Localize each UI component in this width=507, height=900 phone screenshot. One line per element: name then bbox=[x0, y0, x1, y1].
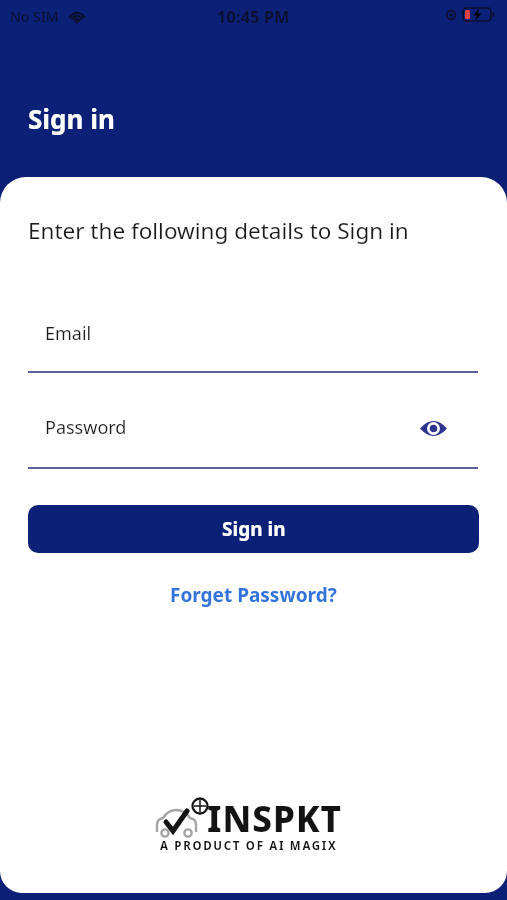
button[interactable]: Forget Password? bbox=[170, 582, 337, 608]
staticText: A PRODUCT OF AI MAGIX bbox=[160, 838, 338, 854]
staticText: No SIM bbox=[10, 7, 59, 26]
staticText: Sign in bbox=[28, 101, 115, 136]
button[interactable]: Sign in bbox=[28, 505, 479, 553]
staticText: 10:45 PM bbox=[217, 6, 290, 28]
staticText: Email bbox=[45, 321, 92, 346]
staticText: INSPKT bbox=[207, 795, 342, 843]
button[interactable] bbox=[420, 419, 447, 438]
staticText: Sign in bbox=[222, 516, 286, 542]
button[interactable]: Password bbox=[28, 395, 478, 475]
button[interactable]: Email bbox=[28, 299, 478, 379]
staticText: Password bbox=[45, 415, 127, 440]
staticText: Enter the following details to Sign in bbox=[28, 215, 409, 246]
